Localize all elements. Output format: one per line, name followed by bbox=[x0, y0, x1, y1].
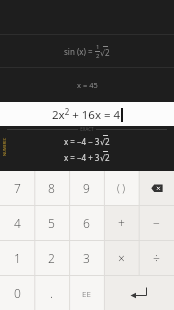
button[interactable]: 4 bbox=[0, 206, 34, 240]
staticText: 5 bbox=[48, 215, 55, 231]
staticText: 2 bbox=[96, 52, 100, 60]
staticText: x = −4 + 3 bbox=[64, 152, 100, 163]
button[interactable]: 7 bbox=[0, 171, 34, 205]
staticText: + bbox=[118, 215, 125, 231]
staticText: 6 bbox=[83, 215, 90, 231]
staticText: NUMERIC bbox=[2, 137, 7, 156]
button[interactable]: 2x2 + 16x = 4 bbox=[0, 102, 174, 126]
staticText: 0 bbox=[14, 285, 21, 301]
staticText: 8 bbox=[48, 180, 55, 196]
staticText: × bbox=[118, 250, 125, 266]
button[interactable]: 0 bbox=[0, 276, 34, 310]
staticText: √2 bbox=[100, 47, 110, 58]
button[interactable]: − bbox=[139, 206, 174, 240]
button[interactable]: 8 bbox=[34, 171, 69, 205]
button[interactable]: 1 bbox=[0, 241, 34, 275]
button[interactable]: ( ) bbox=[104, 171, 139, 205]
staticText: . bbox=[50, 285, 53, 301]
button[interactable]: 3 bbox=[69, 241, 104, 275]
button[interactable]: 9 bbox=[69, 171, 104, 205]
button[interactable] bbox=[104, 276, 174, 310]
button[interactable] bbox=[139, 171, 174, 205]
button[interactable]: + bbox=[104, 206, 139, 240]
staticText: √2 bbox=[100, 136, 110, 147]
staticText: ÷ bbox=[153, 250, 160, 266]
button[interactable]: EE bbox=[69, 276, 104, 310]
staticText: sin (x) = bbox=[64, 46, 95, 57]
button[interactable]: . bbox=[34, 276, 69, 310]
staticText: 3 bbox=[83, 250, 90, 266]
staticText: 4 bbox=[14, 215, 21, 231]
staticText: 7 bbox=[14, 180, 21, 196]
staticText: EXACT bbox=[78, 126, 96, 132]
staticText: x = −4 − 3 bbox=[64, 136, 100, 147]
staticText: 2 bbox=[48, 250, 55, 266]
staticText: ( ) bbox=[117, 181, 126, 195]
button[interactable]: ÷ bbox=[139, 241, 174, 275]
button[interactable]: x = 45 bbox=[0, 68, 174, 102]
button[interactable]: 5 bbox=[34, 206, 69, 240]
button[interactable]: × bbox=[104, 241, 139, 275]
staticText: − bbox=[153, 215, 160, 231]
staticText: x = 45 bbox=[77, 80, 98, 90]
staticText: 1 bbox=[96, 43, 100, 51]
staticText: EE bbox=[82, 288, 91, 299]
staticText: 2x2 + 16x = 4 bbox=[52, 106, 121, 123]
staticText: √2 bbox=[100, 152, 110, 163]
staticText: 1 bbox=[14, 250, 21, 266]
button[interactable]: sin (x) = bbox=[0, 35, 174, 67]
button[interactable]: 2 bbox=[34, 241, 69, 275]
staticText: 9 bbox=[83, 180, 90, 196]
button[interactable]: 6 bbox=[69, 206, 104, 240]
